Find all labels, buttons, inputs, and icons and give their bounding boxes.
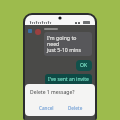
button[interactable]: OK (80, 62, 88, 69)
staticText: I've sent an invite (48, 76, 89, 83)
staticText: Cancel (39, 105, 54, 111)
button[interactable]: I've sent an invite (48, 76, 89, 83)
button[interactable]: Logging on in a few (47, 96, 89, 109)
staticText: OK (80, 62, 88, 69)
button[interactable]: Cancel (35, 103, 58, 113)
staticText: I'm going to need just 5-10 mins (47, 34, 89, 54)
staticText: Logging on in a few (47, 96, 89, 109)
button[interactable]: Delete (64, 103, 87, 113)
button[interactable]: I'm going to need just 5-10 mins (47, 34, 89, 54)
staticText: Delete (68, 105, 83, 111)
staticText: Delete 1 message? (30, 89, 75, 96)
